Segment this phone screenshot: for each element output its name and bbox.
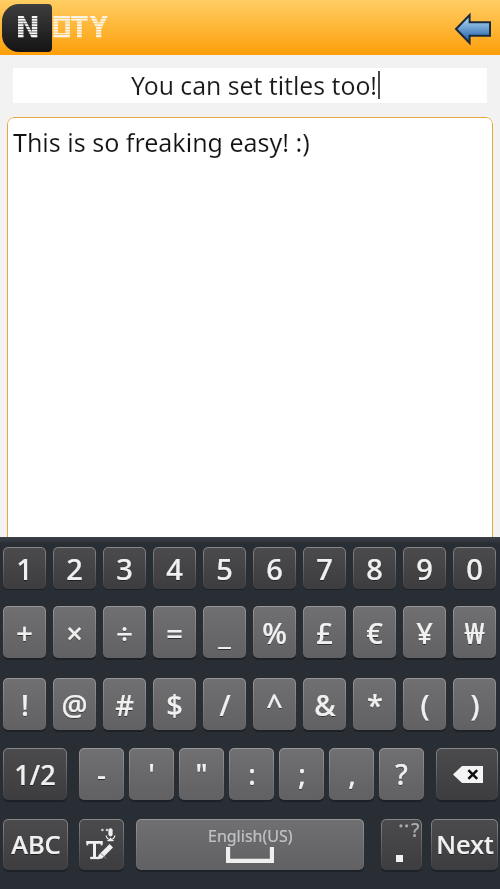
button[interactable]: 9 — [403, 547, 446, 589]
button[interactable]: ABC — [3, 819, 68, 870]
staticText: Next — [436, 828, 494, 863]
button[interactable]: Backspace — [436, 748, 498, 800]
staticText: : — [248, 755, 256, 793]
staticText: ? — [395, 755, 408, 793]
button[interactable]: * — [353, 678, 396, 730]
staticText: ; — [298, 755, 306, 793]
button[interactable]: Voice input — [79, 819, 124, 870]
button[interactable]: 2 — [53, 547, 96, 589]
button[interactable]: You can set titles too! — [13, 68, 487, 103]
button[interactable]: + — [3, 606, 46, 658]
staticText: = — [166, 614, 183, 653]
staticText: 8 — [366, 550, 383, 589]
button[interactable]: ? — [379, 748, 424, 800]
staticText: % — [262, 614, 287, 653]
button[interactable]: 1 — [3, 547, 46, 589]
staticText: * — [367, 686, 383, 725]
button[interactable]: @ — [53, 678, 96, 730]
staticText: " — [195, 755, 208, 793]
staticText: 3 — [116, 549, 133, 588]
staticText: 1 — [16, 550, 33, 589]
staticText: 1 — [16, 549, 33, 588]
staticText: & — [314, 686, 336, 725]
staticText: : — [248, 756, 256, 794]
button[interactable]: 0 — [453, 547, 496, 589]
button[interactable]: This is so freaking easy! :) — [7, 117, 493, 557]
staticText: € — [366, 613, 383, 652]
staticText: " — [195, 756, 208, 794]
button[interactable]: = — [153, 606, 196, 658]
staticText: ₩ — [464, 614, 485, 653]
staticText: , — [348, 756, 356, 794]
staticText: / — [219, 686, 231, 725]
button[interactable]: 8 — [353, 547, 396, 589]
staticText: ABC — [11, 828, 61, 863]
button[interactable]: ! — [3, 678, 46, 730]
button[interactable]: Back — [449, 8, 496, 48]
staticText: ! — [21, 685, 29, 724]
button[interactable]: € — [353, 606, 396, 658]
staticText: 9 — [416, 549, 433, 588]
staticText: ( — [420, 686, 430, 725]
button[interactable]: × — [53, 606, 96, 658]
button[interactable]: English(US) — [136, 819, 364, 870]
button[interactable]: - — [79, 748, 124, 800]
staticText: English(US) — [208, 825, 293, 847]
staticText: ) — [470, 686, 480, 725]
staticText: ABC — [11, 827, 61, 862]
staticText: = — [166, 613, 183, 652]
button[interactable]: ¥ — [403, 606, 446, 658]
staticText: ? — [395, 756, 408, 794]
staticText: 2 — [66, 550, 83, 589]
staticText: % — [262, 613, 287, 652]
staticText: # — [115, 685, 134, 724]
button[interactable]: ; — [279, 748, 324, 800]
button[interactable]: 1/2 — [3, 748, 67, 800]
button[interactable]: # — [103, 678, 146, 730]
staticText: 1/2 — [14, 756, 56, 793]
button[interactable]: " — [179, 748, 224, 800]
button[interactable]: 3 — [103, 547, 146, 589]
staticText: ¥ — [416, 613, 433, 652]
button[interactable]: 6 — [253, 547, 296, 589]
staticText: € — [366, 614, 383, 653]
button[interactable]: $ — [153, 678, 196, 730]
button[interactable]: / — [203, 678, 246, 730]
button[interactable]: , — [329, 748, 374, 800]
staticText: ' — [148, 756, 155, 794]
staticText: ( — [420, 685, 430, 724]
button[interactable]: 7 — [303, 547, 346, 589]
staticText: 5 — [216, 550, 233, 589]
staticText: ' — [148, 755, 155, 793]
button[interactable]: ₩ — [453, 606, 496, 658]
button[interactable]: ) — [453, 678, 496, 730]
staticText: ) — [470, 685, 480, 724]
staticText: ¥ — [416, 614, 433, 653]
button[interactable]: £ — [303, 606, 346, 658]
staticText: ÷ — [116, 614, 133, 653]
staticText: 3 — [116, 550, 133, 589]
staticText: 7 — [316, 550, 333, 589]
button[interactable]: ÷ — [103, 606, 146, 658]
staticText: 6 — [266, 549, 283, 588]
button[interactable]: & — [303, 678, 346, 730]
staticText: 4 — [166, 550, 183, 589]
staticText: _ — [218, 613, 231, 652]
button[interactable]: Next — [431, 819, 498, 870]
staticText: £ — [316, 613, 333, 652]
staticText: 7 — [316, 549, 333, 588]
button[interactable]: ( — [403, 678, 446, 730]
button[interactable]: ^ — [253, 678, 296, 730]
button[interactable]: % — [253, 606, 296, 658]
staticText: 5 — [216, 549, 233, 588]
staticText: 4 — [166, 549, 183, 588]
button[interactable]: Period — [381, 819, 422, 870]
button[interactable]: : — [229, 748, 274, 800]
staticText: - — [97, 755, 106, 793]
button[interactable]: 5 — [203, 547, 246, 589]
staticText: $ — [166, 685, 183, 724]
button[interactable]: ' — [129, 748, 174, 800]
staticText: 0 — [466, 550, 483, 589]
button[interactable]: 4 — [153, 547, 196, 589]
button[interactable]: _ — [203, 606, 246, 658]
